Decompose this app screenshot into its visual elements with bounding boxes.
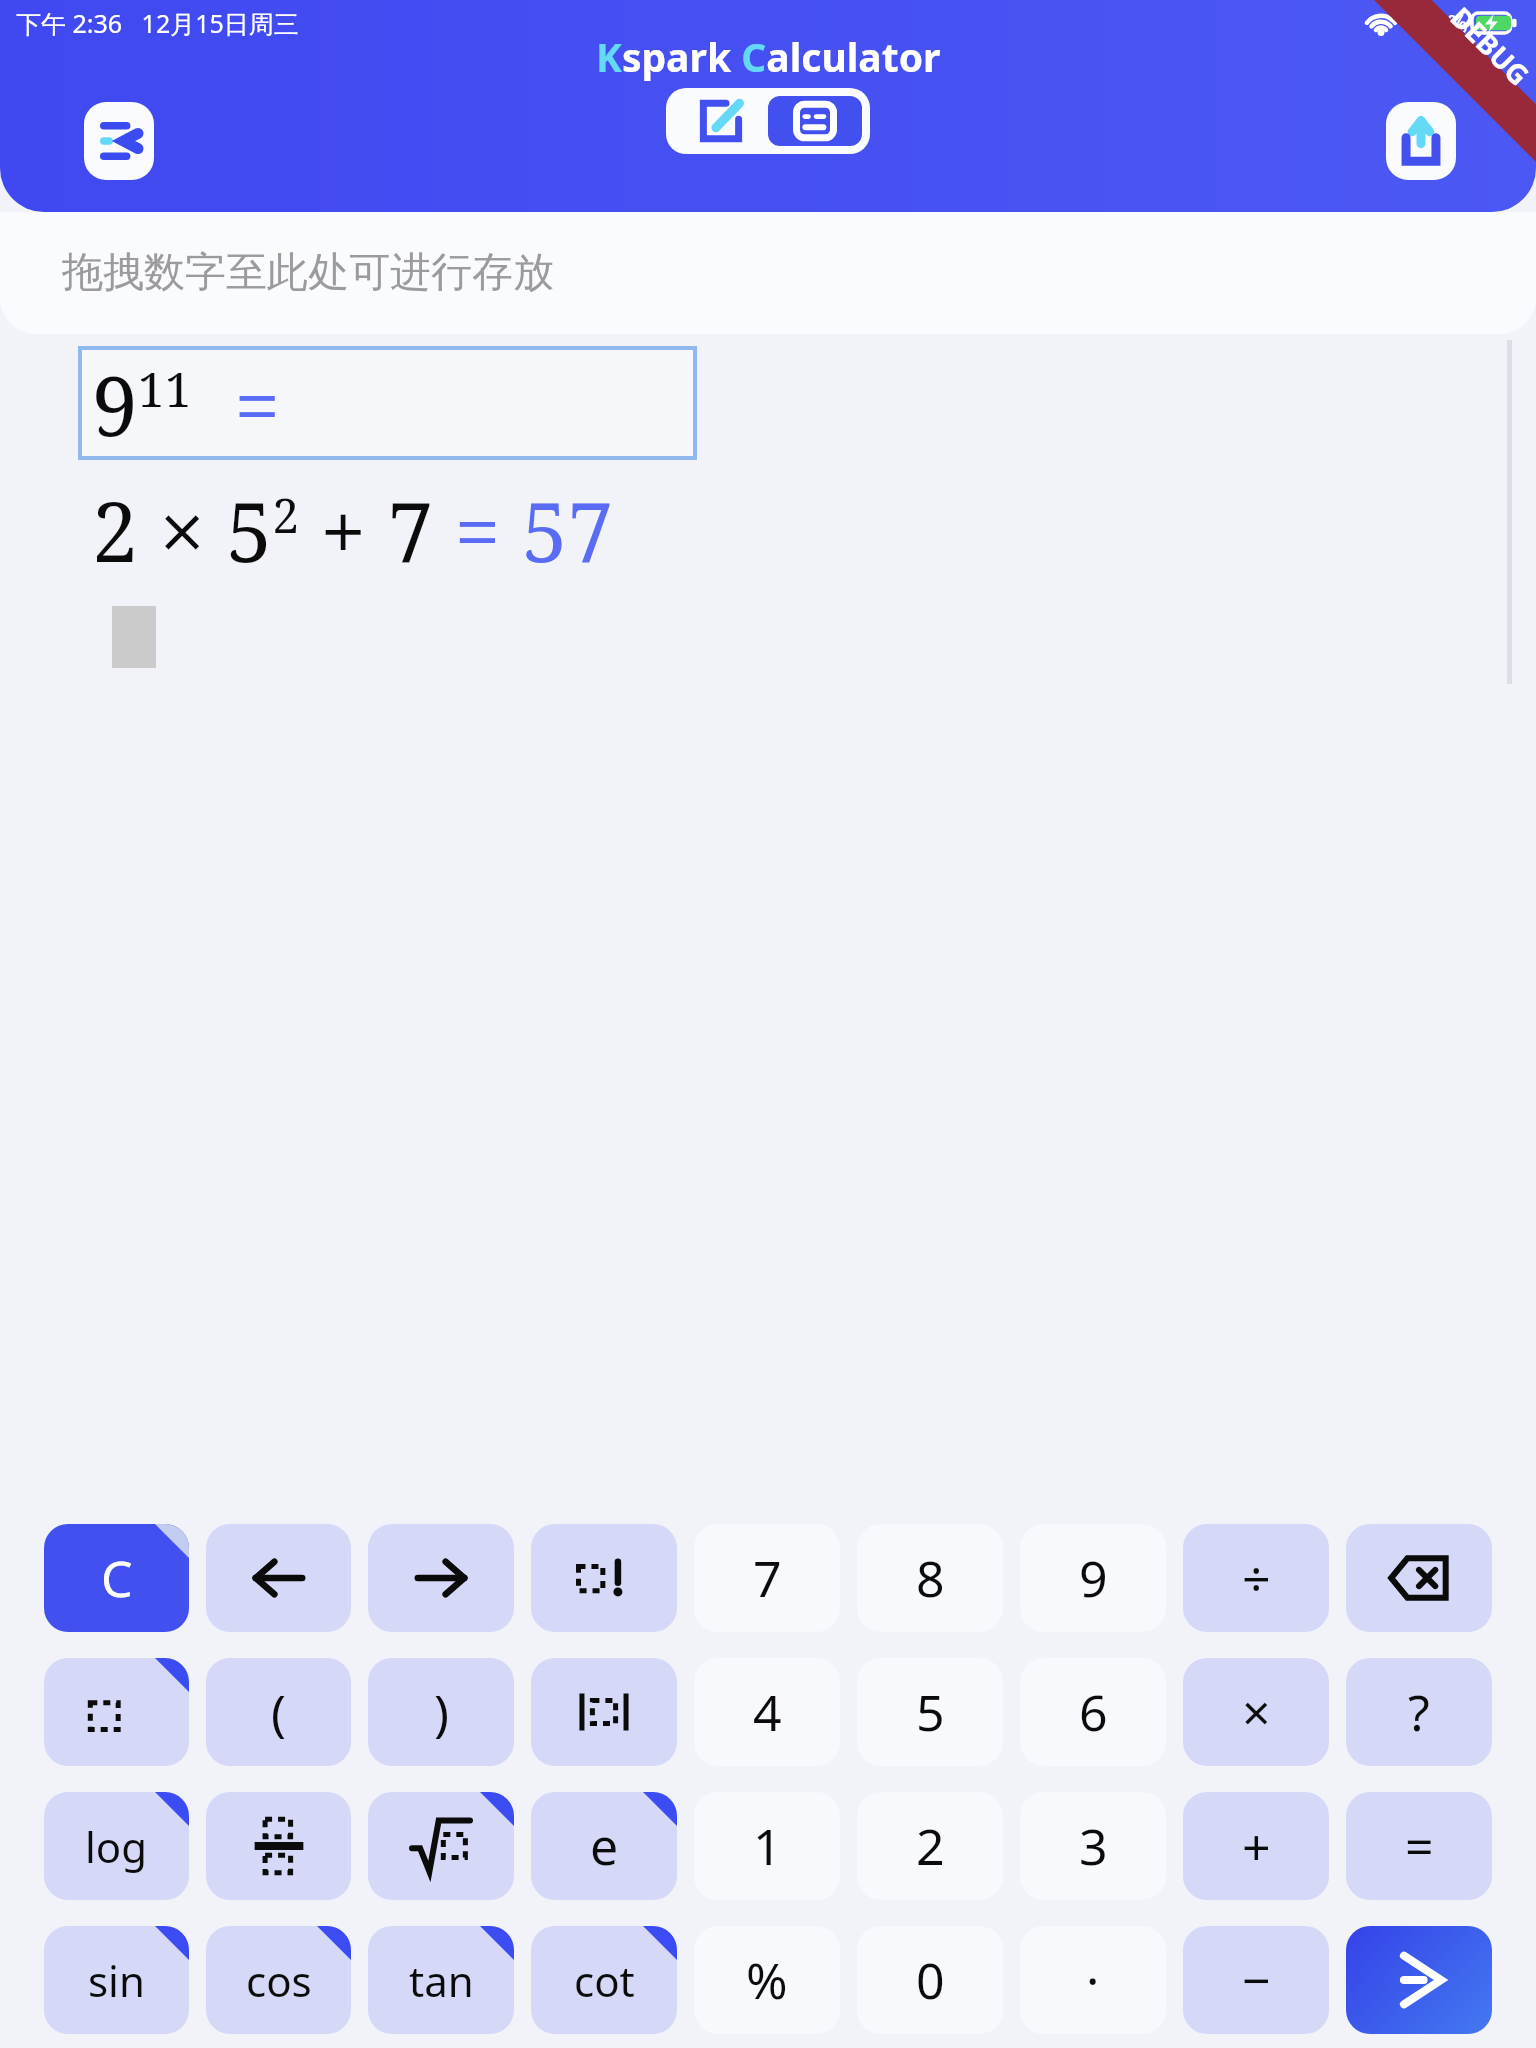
button[interactable]: %: [694, 1926, 840, 2034]
staticText: 1: [753, 1812, 782, 1880]
staticText: 4: [753, 1678, 782, 1746]
button[interactable]: Fraction: [206, 1792, 351, 1900]
staticText: ·: [1086, 1946, 1100, 2014]
button[interactable]: 8: [857, 1524, 1003, 1632]
button[interactable]: Absolute value: [531, 1658, 677, 1766]
button[interactable]: +: [1183, 1792, 1329, 1900]
staticText: 7: [753, 1544, 782, 1612]
staticText: C: [101, 1544, 133, 1612]
button[interactable]: Menu: [84, 102, 154, 180]
button[interactable]: Square: [44, 1658, 189, 1766]
staticText: 3: [1079, 1812, 1108, 1880]
button[interactable]: ×: [1183, 1658, 1329, 1766]
button[interactable]: 1: [694, 1792, 840, 1900]
button[interactable]: sin: [44, 1926, 189, 2034]
button[interactable]: Backspace: [1346, 1524, 1492, 1632]
staticText: 下午 2:36 12月15日周三: [16, 6, 299, 40]
button[interactable]: 911 = 31381059609: [80, 348, 695, 458]
staticText: ÷: [1242, 1544, 1271, 1612]
staticText: tan: [409, 1952, 474, 2009]
staticText: Kspark Calculator: [596, 30, 941, 83]
button[interactable]: 拖拽数字至此处可进行存放: [0, 212, 1536, 334]
staticText: 8: [916, 1544, 945, 1612]
button[interactable]: Move cursor right: [368, 1524, 514, 1632]
staticText: e: [590, 1812, 619, 1880]
button[interactable]: Calculate: [1346, 1926, 1492, 2034]
staticText: 5: [916, 1678, 945, 1746]
button[interactable]: 7: [694, 1524, 840, 1632]
button[interactable]: Edit mode: [674, 96, 768, 146]
staticText: 9: [1079, 1544, 1108, 1612]
button[interactable]: ): [368, 1658, 514, 1766]
button[interactable]: −: [1183, 1926, 1329, 2034]
button[interactable]: =: [1346, 1792, 1492, 1900]
button[interactable]: Move cursor left: [206, 1524, 351, 1632]
button[interactable]: 0: [857, 1926, 1003, 2034]
button[interactable]: 9: [1020, 1524, 1166, 1632]
staticText: (: [271, 1678, 286, 1746]
staticText: cos: [246, 1952, 312, 2009]
button[interactable]: 5: [857, 1658, 1003, 1766]
button[interactable]: Card mode: [768, 96, 862, 146]
button[interactable]: 6: [1020, 1658, 1166, 1766]
button[interactable]: ·: [1020, 1926, 1166, 2034]
button[interactable]: ÷: [1183, 1524, 1329, 1632]
staticText: ?: [1408, 1678, 1430, 1746]
staticText: +: [1242, 1812, 1271, 1880]
button[interactable]: 3: [1020, 1792, 1166, 1900]
staticText: cot: [574, 1952, 635, 2009]
button[interactable]: log: [44, 1792, 189, 1900]
button[interactable]: tan: [368, 1926, 514, 2034]
staticText: log: [85, 1818, 148, 1875]
staticText: DEBUG: [1443, 0, 1536, 94]
staticText: 6: [1079, 1678, 1108, 1746]
button[interactable]: cos: [206, 1926, 351, 2034]
button[interactable]: Factorial: [531, 1524, 677, 1632]
button[interactable]: 4: [694, 1658, 840, 1766]
staticText: 2: [916, 1812, 945, 1880]
staticText: sin: [88, 1952, 145, 2009]
staticText: =: [1405, 1812, 1434, 1880]
staticText: %: [746, 1946, 788, 2014]
button[interactable]: C: [44, 1524, 189, 1632]
staticText: 拖拽数字至此处可进行存放: [62, 247, 554, 299]
button[interactable]: e: [531, 1792, 677, 1900]
button[interactable]: ?: [1346, 1658, 1492, 1766]
button[interactable]: (: [206, 1658, 351, 1766]
button[interactable]: Share: [1386, 102, 1456, 180]
staticText: ×: [1242, 1678, 1271, 1746]
staticText: 100%: [1404, 6, 1468, 40]
staticText: 2 × 52 + 7 = 57: [92, 474, 614, 586]
button[interactable]: Square root: [368, 1792, 514, 1900]
button[interactable]: 2: [857, 1792, 1003, 1900]
staticText: 911 = 31381059609: [92, 348, 695, 458]
staticText: −: [1242, 1946, 1271, 2014]
staticText: 0: [916, 1946, 945, 2014]
button[interactable]: cot: [531, 1926, 677, 2034]
staticText: ): [434, 1678, 449, 1746]
